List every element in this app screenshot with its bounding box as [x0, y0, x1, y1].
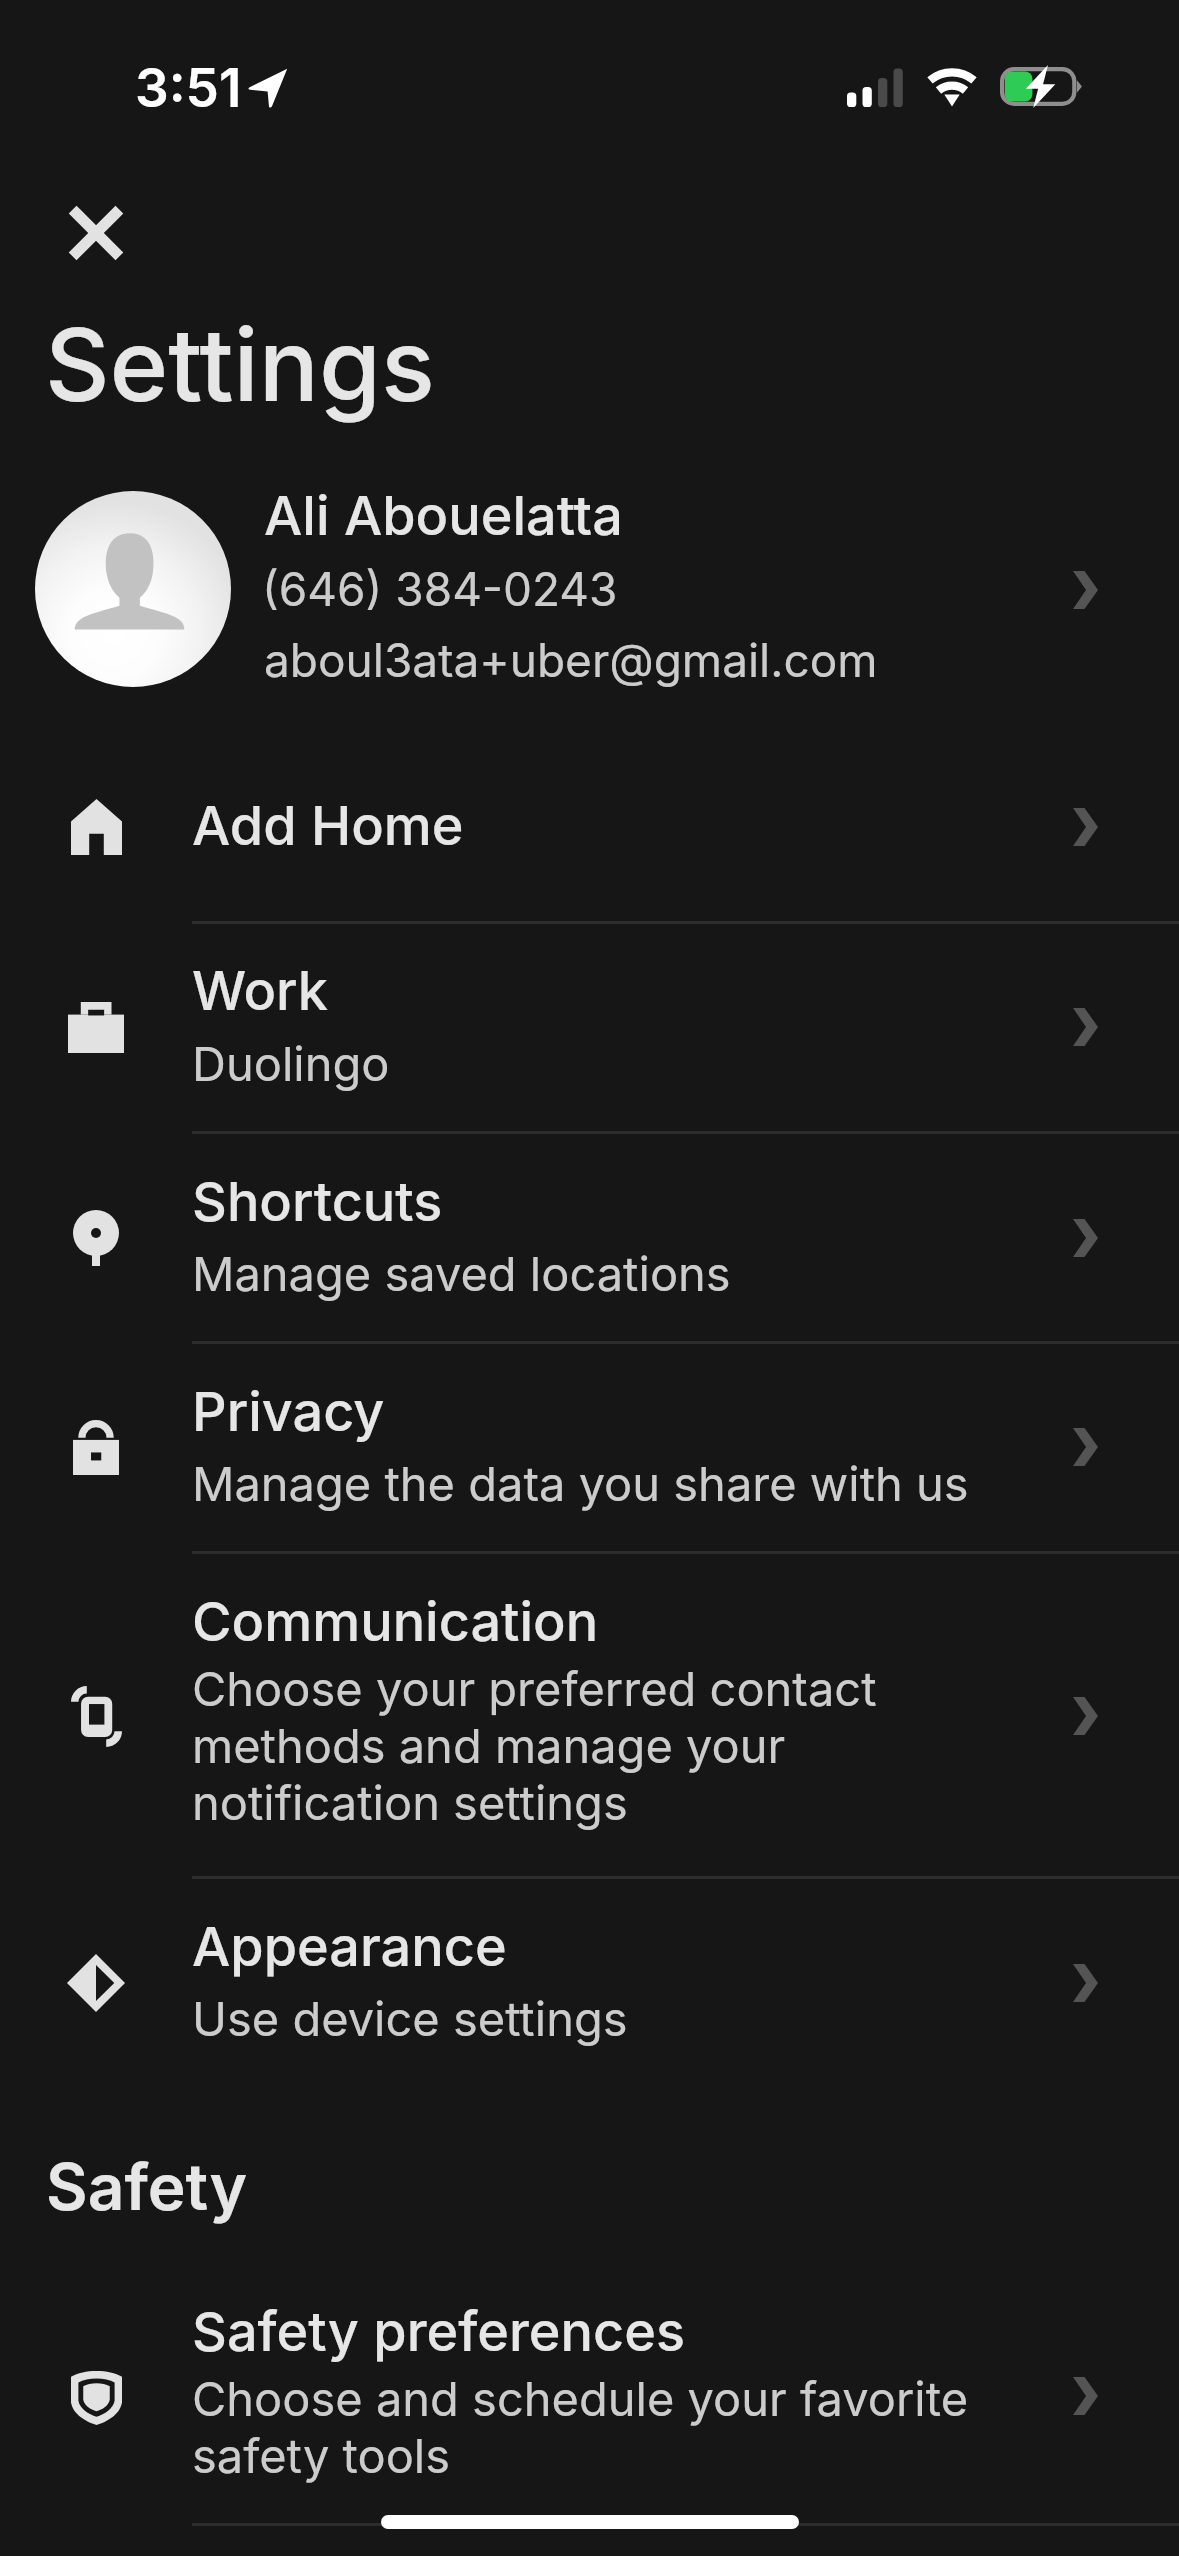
button[interactable]: Privacy — [0, 1342, 1179, 1551]
staticText: Choose your preferred contact — [192, 1660, 877, 1717]
staticText: aboul3ata+uber@gmail.com — [264, 632, 878, 688]
button[interactable]: Add Home — [0, 755, 1179, 921]
staticText: Ali Abouelatta — [264, 483, 623, 548]
staticText: Add Home — [192, 793, 464, 858]
staticText: Communication — [192, 1589, 599, 1654]
staticText: Choose and schedule your favorite — [192, 2370, 969, 2427]
staticText: safety tools — [192, 2427, 451, 2484]
staticText: Safety preferences — [192, 2299, 685, 2364]
button[interactable]: Ali Abouelatta — [0, 462, 1179, 718]
staticText: Shortcuts — [192, 1169, 443, 1234]
staticText: Manage the data you share with us — [192, 1455, 969, 1512]
staticText: Work — [192, 958, 328, 1023]
button[interactable]: Safety preferences — [0, 2262, 1179, 2523]
staticText: Settings — [45, 304, 435, 425]
staticText: (646) 384-0243 — [262, 561, 618, 617]
staticText: Duolingo — [192, 1035, 390, 1092]
button[interactable]: Shortcuts — [0, 1132, 1179, 1341]
button[interactable]: Communication — [0, 1552, 1179, 1876]
staticText: Privacy — [192, 1379, 385, 1444]
staticText: 3:51 — [135, 56, 242, 120]
staticText: Appearance — [192, 1914, 507, 1979]
button[interactable]: Appearance — [0, 1877, 1179, 2083]
button[interactable]: Work — [0, 922, 1179, 1131]
staticText: Use device settings — [192, 1990, 628, 2047]
staticText: notification settings — [192, 1774, 628, 1831]
staticText: Safety — [46, 2148, 248, 2225]
staticText: Manage saved locations — [192, 1245, 731, 1302]
button[interactable]: Close — [26, 163, 165, 302]
staticText: methods and manage your — [192, 1717, 786, 1774]
